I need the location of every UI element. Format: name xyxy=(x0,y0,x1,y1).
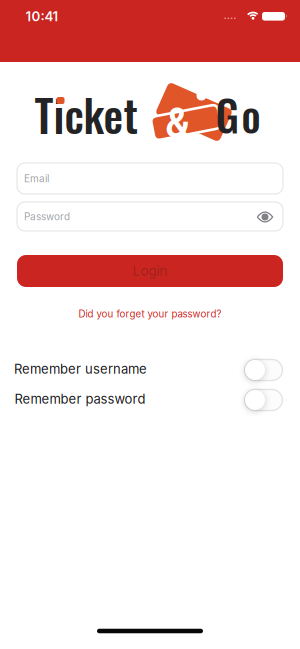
button[interactable]: Login xyxy=(17,255,283,287)
staticText: Login xyxy=(132,263,167,279)
staticText: Ticket xyxy=(34,81,138,147)
staticText: Did you forget your password? xyxy=(78,308,221,320)
staticText: 10:41 xyxy=(25,8,58,24)
button[interactable]: Did you forget your password? xyxy=(78,308,221,320)
button[interactable]: Password xyxy=(17,202,283,231)
staticText: Remember username xyxy=(14,361,147,377)
button[interactable]: Email xyxy=(17,163,283,194)
button[interactable]: Remember password xyxy=(244,389,282,410)
staticText: Email xyxy=(24,172,49,185)
staticText: & xyxy=(165,93,190,150)
button[interactable]: Remember username xyxy=(244,359,282,380)
staticText: Go xyxy=(215,83,260,146)
button[interactable]: Show password xyxy=(256,211,273,223)
staticText: Remember password xyxy=(14,391,145,407)
staticText: Password xyxy=(24,210,70,223)
